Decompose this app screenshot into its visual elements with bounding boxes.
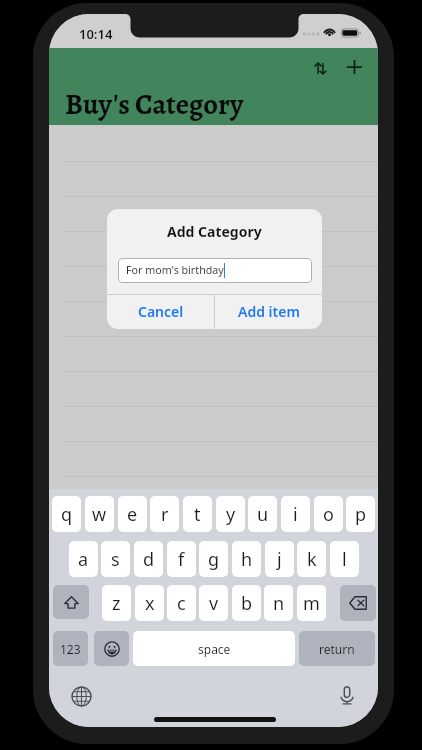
button[interactable]: d xyxy=(134,541,163,577)
button[interactable]: g xyxy=(199,541,228,577)
staticText: 10:14 xyxy=(79,25,113,43)
button[interactable]: q xyxy=(52,496,81,532)
staticText: w xyxy=(92,502,107,527)
staticText: Buy's Category xyxy=(65,85,244,124)
staticText: q xyxy=(61,502,73,527)
staticText: c xyxy=(177,591,186,616)
staticText: x xyxy=(145,591,155,616)
button[interactable]: w xyxy=(85,496,114,532)
button[interactable]: Add item xyxy=(215,294,322,329)
button[interactable]: x xyxy=(135,585,164,621)
button[interactable]: For mom's birthday xyxy=(118,258,312,283)
button[interactable]: Sort xyxy=(304,52,336,84)
staticText: For mom's birthday xyxy=(126,263,224,278)
staticText: 123 xyxy=(60,641,81,657)
button[interactable]: e xyxy=(118,496,147,532)
button[interactable]: Dictation xyxy=(336,685,357,706)
button[interactable]: i xyxy=(281,496,310,532)
staticText: h xyxy=(241,547,253,572)
staticText: f xyxy=(178,547,185,572)
staticText: e xyxy=(127,502,138,527)
button[interactable]: l xyxy=(330,541,359,577)
button[interactable]: f xyxy=(167,541,196,577)
staticText: s xyxy=(111,547,120,572)
staticText: k xyxy=(307,547,317,572)
button[interactable]: t xyxy=(183,496,212,532)
button[interactable]: Backspace xyxy=(340,585,376,621)
button[interactable]: y xyxy=(216,496,245,532)
button[interactable]: Emoji xyxy=(94,631,129,666)
button[interactable]: z xyxy=(102,585,131,621)
staticText: b xyxy=(241,591,253,616)
button[interactable]: Cancel xyxy=(107,294,214,329)
button[interactable]: r xyxy=(150,496,179,532)
staticText: y xyxy=(226,502,236,527)
staticText: z xyxy=(112,591,121,616)
staticText: return xyxy=(319,641,355,657)
button[interactable]: 123 xyxy=(53,631,88,666)
staticText: j xyxy=(277,547,282,572)
staticText: d xyxy=(143,547,155,572)
button[interactable]: Change keyboard xyxy=(71,686,92,707)
button[interactable]: p xyxy=(346,496,375,532)
button[interactable]: v xyxy=(199,585,228,621)
button[interactable]: h xyxy=(232,541,261,577)
button[interactable]: n xyxy=(264,585,293,621)
staticText: r xyxy=(161,502,169,527)
staticText: u xyxy=(257,502,269,527)
button[interactable]: m xyxy=(297,585,326,621)
button[interactable]: b xyxy=(232,585,261,621)
button[interactable]: u xyxy=(248,496,277,532)
button[interactable]: k xyxy=(297,541,326,577)
button[interactable]: Add xyxy=(338,51,370,83)
staticText: Add item xyxy=(238,302,300,321)
button[interactable]: a xyxy=(69,541,98,577)
button[interactable]: c xyxy=(167,585,196,621)
staticText: m xyxy=(303,591,320,616)
staticText: p xyxy=(355,502,367,527)
staticText: n xyxy=(273,591,285,616)
staticText: i xyxy=(293,502,298,527)
button[interactable]: o xyxy=(314,496,343,532)
staticText: o xyxy=(323,502,334,527)
staticText: t xyxy=(194,502,201,527)
staticText: g xyxy=(208,547,220,572)
staticText: space xyxy=(198,641,231,657)
staticText: Add Category xyxy=(167,222,262,241)
button[interactable]: Shift xyxy=(53,585,89,619)
button[interactable]: space xyxy=(133,631,295,666)
staticText: Cancel xyxy=(138,302,184,321)
staticText: a xyxy=(78,547,89,572)
staticText: l xyxy=(342,547,347,572)
button[interactable]: return xyxy=(299,631,375,666)
staticText: v xyxy=(209,591,219,616)
button[interactable]: j xyxy=(265,541,294,577)
button[interactable]: s xyxy=(101,541,130,577)
